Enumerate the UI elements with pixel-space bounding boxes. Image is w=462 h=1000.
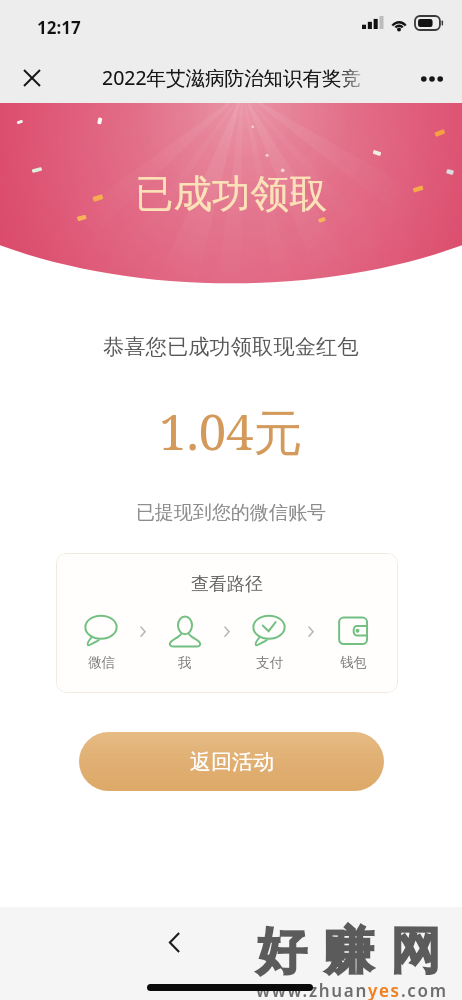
button[interactable]: 返回活动 (79, 732, 384, 791)
staticText: 支付 (256, 654, 283, 671)
staticText: 已成功领取 (135, 170, 328, 219)
button[interactable]: More options (409, 62, 455, 96)
staticText: 1.04元 (159, 398, 303, 465)
staticText: www.zhuan (256, 979, 368, 1000)
button[interactable]: Back (151, 919, 197, 965)
staticText: 好赚网 (248, 920, 449, 983)
staticText: 查看路径 (191, 573, 263, 596)
button[interactable]: 钱包 (331, 615, 375, 671)
button[interactable]: 查看路径 (56, 553, 398, 693)
button[interactable]: 我 (163, 615, 207, 671)
staticText: 2022年艾滋病防治知识有奖竞答 (102, 64, 375, 91)
staticText: 微信 (88, 654, 115, 671)
staticText: 钱包 (340, 654, 367, 671)
button[interactable]: Close (9, 55, 55, 101)
staticText: 12:17 (37, 16, 81, 39)
button[interactable]: 微信 (79, 615, 123, 671)
staticText: 已提现到您的微信账号 (136, 501, 326, 525)
staticText: 恭喜您已成功领取现金红包 (103, 333, 359, 360)
staticText: yes (368, 979, 401, 1000)
button[interactable]: 支付 (247, 615, 291, 671)
staticText: 返回活动 (190, 749, 274, 775)
staticText: 我 (178, 654, 192, 671)
staticText: .com (401, 979, 448, 1000)
